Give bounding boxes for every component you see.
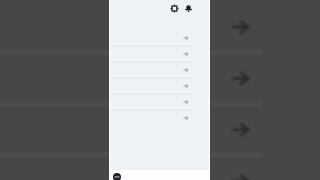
- button[interactable]: [109, 46, 210, 62]
- button[interactable]: Settings: [168, 2, 180, 14]
- button[interactable]: Account: [113, 173, 121, 180]
- button[interactable]: [109, 62, 210, 78]
- button[interactable]: [109, 78, 210, 94]
- button[interactable]: Notifications: [182, 2, 194, 14]
- button[interactable]: [109, 30, 210, 46]
- button[interactable]: [109, 110, 210, 126]
- button[interactable]: [109, 94, 210, 110]
